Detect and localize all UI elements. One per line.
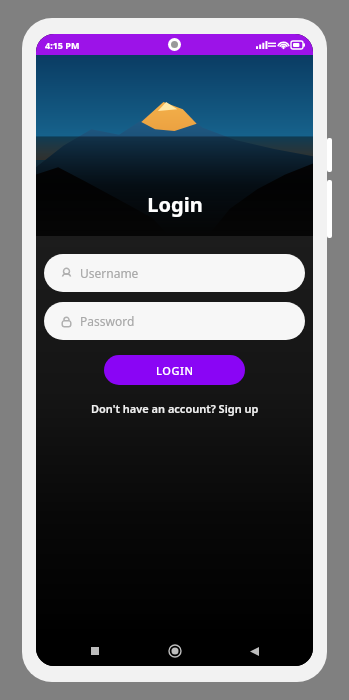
button[interactable]: Home <box>164 640 186 662</box>
button[interactable]: Password <box>44 302 305 340</box>
button[interactable]: LOGIN <box>104 355 245 385</box>
staticText: Username <box>80 265 139 281</box>
staticText: 4:15 PM <box>45 39 80 51</box>
button[interactable]: Don't have an account? Sign up <box>85 399 265 418</box>
button[interactable]: Recents <box>84 640 106 662</box>
button[interactable]: Username <box>44 254 305 292</box>
button[interactable]: Back <box>243 640 265 662</box>
staticText: Don't have an account? Sign up <box>91 401 259 416</box>
staticText: Login <box>147 191 203 218</box>
staticText: LOGIN <box>156 363 194 378</box>
staticText: Password <box>80 313 135 329</box>
